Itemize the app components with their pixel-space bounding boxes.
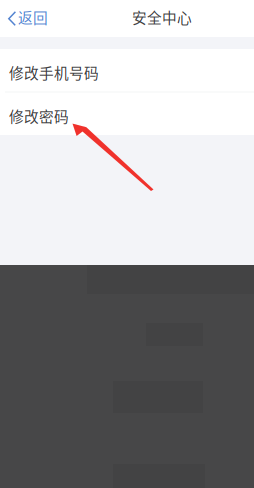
staticText: 修改手机号码 [9,62,99,83]
staticText: 返回 [18,6,48,28]
staticText: 修改密码 [9,105,69,126]
button[interactable]: 返回 [0,0,72,37]
button[interactable]: 修改手机号码 [0,49,254,91]
button[interactable]: 修改密码 [0,92,254,135]
staticText: 安全中心 [132,6,192,28]
